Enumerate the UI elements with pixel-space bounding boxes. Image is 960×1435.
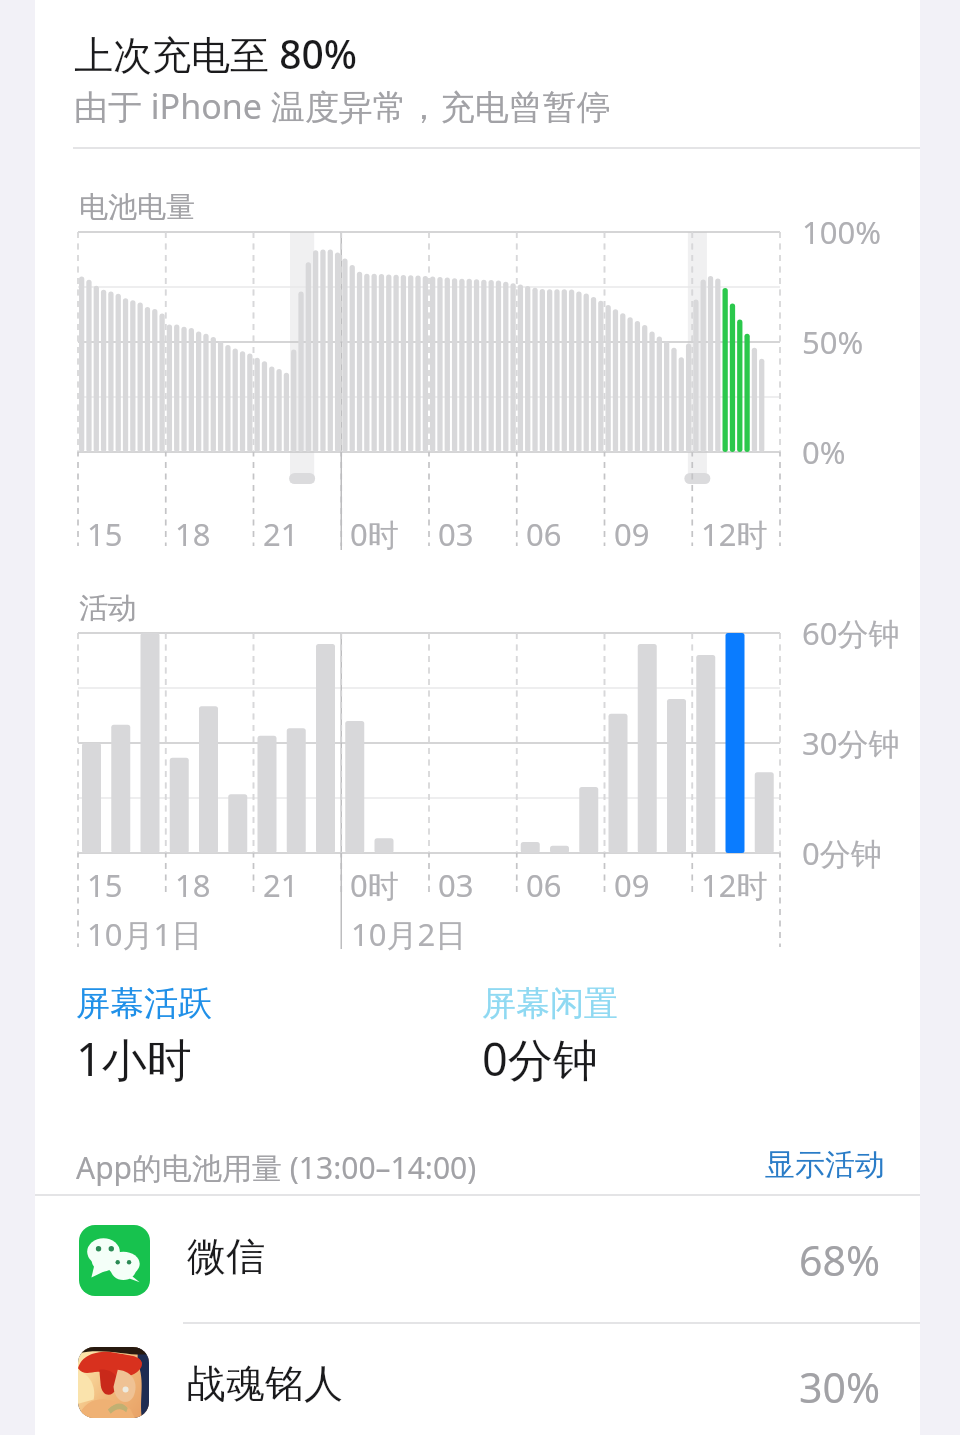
staticText: 电池电量	[79, 189, 195, 226]
staticText: 微信	[187, 1232, 265, 1281]
staticText: 10月2日	[351, 913, 467, 955]
staticText: 1小时	[76, 1028, 192, 1089]
staticText: 09	[614, 864, 650, 906]
staticText: 09	[614, 513, 650, 555]
staticText: 68%	[799, 1232, 880, 1288]
staticText: 06	[526, 513, 562, 555]
staticText: 显示活动	[765, 1146, 885, 1184]
staticText: 30分钟	[802, 722, 900, 764]
staticText: 06	[526, 864, 562, 906]
button[interactable]: 屏幕活跃	[72, 980, 392, 1090]
staticText: 0时	[350, 513, 399, 555]
button[interactable]: 显示活动	[761, 1142, 890, 1190]
staticText: 上次充电至 80%	[74, 27, 357, 80]
staticText: 18	[175, 864, 211, 906]
other: 战魂铭人 app icon	[78, 1347, 149, 1418]
staticText: 0%	[802, 431, 846, 473]
staticText: 15	[87, 513, 123, 555]
button[interactable]: 微信 app icon	[35, 1196, 920, 1323]
staticText: 21	[263, 513, 299, 555]
button[interactable]: 屏幕闲置	[478, 980, 798, 1090]
button[interactable]: 战魂铭人 app icon	[35, 1323, 920, 1435]
staticText: 30%	[799, 1359, 880, 1415]
staticText: 15	[87, 864, 123, 906]
staticText: 100%	[802, 211, 881, 253]
staticText: 0时	[350, 864, 399, 906]
staticText: 12时	[701, 864, 768, 906]
staticText: 03	[438, 864, 474, 906]
staticText: 03	[438, 513, 474, 555]
staticText: 18	[175, 513, 211, 555]
other: 微信 app icon	[79, 1225, 150, 1296]
staticText: 21	[263, 864, 299, 906]
staticText: 屏幕活跃	[76, 982, 212, 1025]
staticText: 0分钟	[802, 832, 882, 874]
staticText: 战魂铭人	[187, 1359, 343, 1408]
staticText: 60分钟	[802, 612, 900, 654]
staticText: 由于 iPhone 温度异常，充电曾暂停	[74, 83, 611, 129]
staticText: 屏幕闲置	[482, 982, 618, 1025]
staticText: 50%	[802, 321, 864, 363]
staticText: 活动	[79, 590, 137, 627]
staticText: 0分钟	[482, 1028, 598, 1089]
staticText: 12时	[701, 513, 768, 555]
staticText: 10月1日	[87, 913, 203, 955]
staticText: App的电池用量 (13:00–14:00)	[76, 1147, 477, 1188]
